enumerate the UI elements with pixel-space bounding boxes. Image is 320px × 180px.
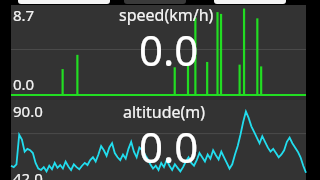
staticText: 0.0 [139,21,199,78]
button[interactable]: 90.0 [11,100,306,180]
staticText: 0.0 [13,74,35,94]
staticText: speed(km/h) [119,4,214,26]
button[interactable]: 8.7 [11,5,306,94]
staticText: 8.7 [13,5,35,25]
button[interactable]: Chip 1 [18,0,110,4]
button[interactable]: Chip 3 [214,0,286,4]
staticText: altitude(m) [123,101,206,123]
staticText: 42.0 [13,168,43,180]
staticText: 0.0 [139,118,199,175]
staticText: 90.0 [13,101,43,121]
button[interactable]: Chip 2 [124,0,186,4]
